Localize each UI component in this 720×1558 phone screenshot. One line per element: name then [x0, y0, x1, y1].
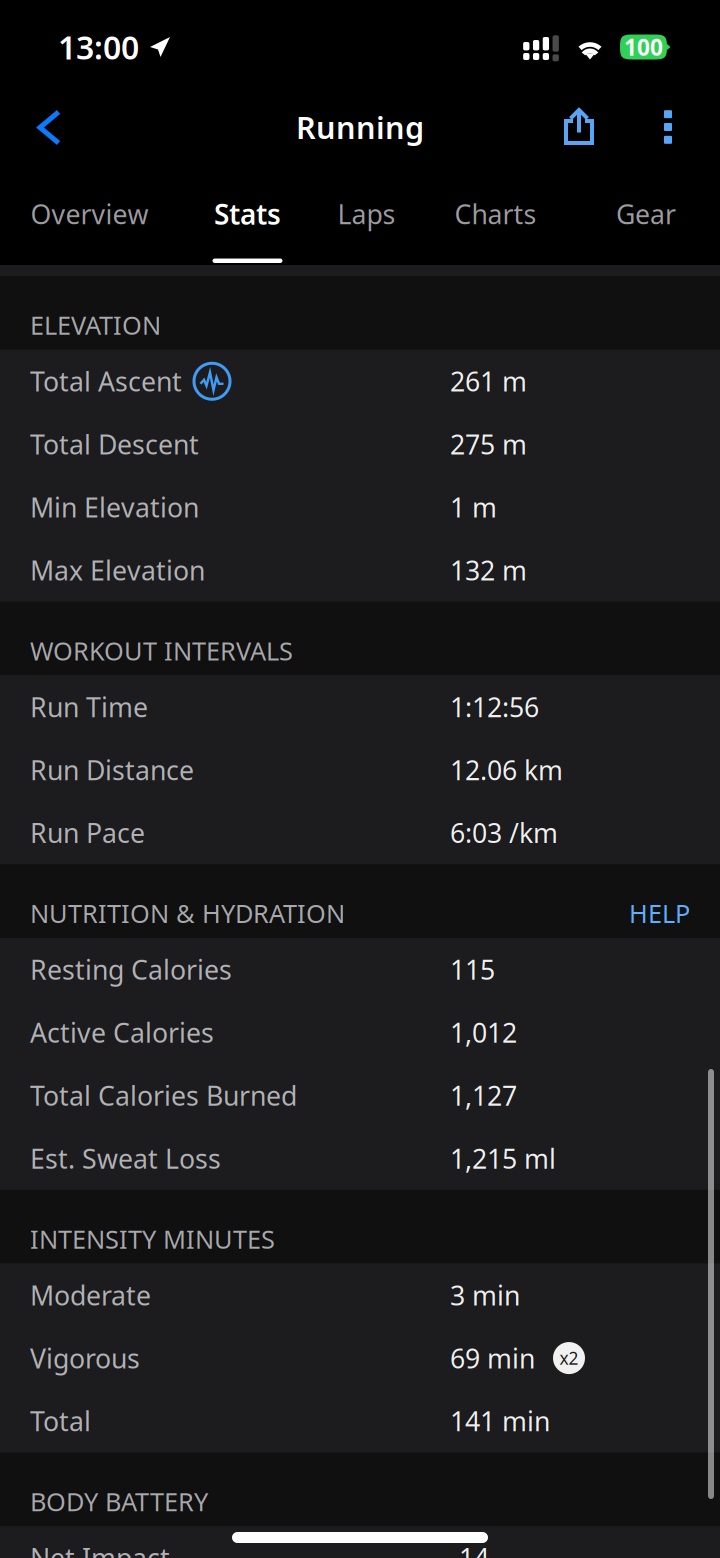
staticText: x2 — [559, 1347, 578, 1370]
staticText: WORKOUT INTERVALS — [30, 634, 293, 667]
staticText: 1,215 ml — [450, 1141, 556, 1176]
button[interactable]: Charts — [417, 175, 574, 265]
button[interactable]: Est. Sweat Loss — [0, 1127, 720, 1190]
staticText: 1,012 — [450, 1015, 517, 1050]
staticText: Stats — [214, 195, 281, 233]
staticText: Running — [296, 107, 424, 147]
staticText: Net Impact — [30, 1540, 170, 1558]
staticText: -14 — [450, 1540, 489, 1558]
staticText: 1 m — [450, 489, 497, 525]
button[interactable]: Run Distance — [0, 738, 720, 801]
staticText: Charts — [454, 196, 536, 232]
button[interactable]: More options — [642, 88, 720, 175]
button[interactable]: Net Impact — [0, 1526, 720, 1558]
staticText: INTENSITY MINUTES — [30, 1222, 275, 1256]
staticText: 12.06 km — [450, 752, 563, 787]
staticText: 1,127 — [450, 1078, 517, 1113]
button[interactable]: Overview — [0, 175, 179, 265]
button[interactable]: Back — [0, 88, 83, 175]
staticText: ELEVATION — [30, 308, 161, 342]
button[interactable]: Total Descent — [0, 413, 720, 476]
button[interactable]: Stats — [179, 175, 316, 265]
button[interactable]: Laps — [316, 175, 417, 265]
staticText: 132 m — [450, 552, 527, 588]
staticText: 141 min — [450, 1403, 550, 1439]
button[interactable]: Vigorous — [0, 1327, 720, 1390]
staticText: Active Calories — [30, 1015, 214, 1050]
button[interactable]: Run Time — [0, 675, 720, 738]
staticText: Max Elevation — [30, 552, 205, 588]
button[interactable]: Moderate — [0, 1264, 720, 1327]
staticText: 261 m — [450, 364, 527, 399]
staticText: Run Time — [30, 689, 148, 725]
staticText: BODY BATTERY — [30, 1485, 208, 1518]
staticText: Run Pace — [30, 815, 145, 850]
staticText: HELP — [629, 896, 690, 930]
staticText: Min Elevation — [30, 489, 199, 525]
staticText: Total Ascent — [30, 364, 182, 399]
staticText: Total Calories Burned — [30, 1078, 297, 1113]
staticText: 1:12:56 — [450, 689, 539, 725]
button[interactable]: Total Calories Burned — [0, 1064, 720, 1127]
staticText: Overview — [30, 196, 148, 232]
staticText: Total — [30, 1403, 91, 1439]
button[interactable]: Total Ascent — [0, 350, 720, 413]
staticText: 115 — [450, 952, 495, 987]
staticText: 100 — [624, 32, 663, 62]
staticText: Gear — [616, 196, 676, 232]
staticText: Moderate — [30, 1277, 151, 1313]
button[interactable]: Min Elevation — [0, 476, 720, 539]
button[interactable]: HELP — [629, 896, 690, 930]
staticText: 69 min — [450, 1340, 535, 1376]
staticText: 3 min — [450, 1277, 520, 1313]
staticText: Laps — [337, 196, 395, 232]
staticText: Resting Calories — [30, 952, 232, 987]
staticText: Vigorous — [30, 1340, 140, 1376]
staticText: 6:03 /km — [450, 815, 558, 850]
staticText: Run Distance — [30, 752, 194, 787]
button[interactable]: Resting Calories — [0, 938, 720, 1001]
button[interactable]: Max Elevation — [0, 539, 720, 602]
staticText: 13:00 — [58, 26, 139, 68]
button[interactable]: Run Pace — [0, 801, 720, 864]
staticText: Total Descent — [30, 426, 199, 462]
staticText: NUTRITION & HYDRATION — [30, 896, 345, 930]
button[interactable]: Gear — [574, 175, 718, 265]
button[interactable]: Active Calories — [0, 1001, 720, 1064]
staticText: Est. Sweat Loss — [30, 1141, 221, 1176]
staticText: 275 m — [450, 426, 527, 462]
button[interactable]: Total — [0, 1390, 720, 1453]
button[interactable]: Share — [542, 88, 642, 175]
